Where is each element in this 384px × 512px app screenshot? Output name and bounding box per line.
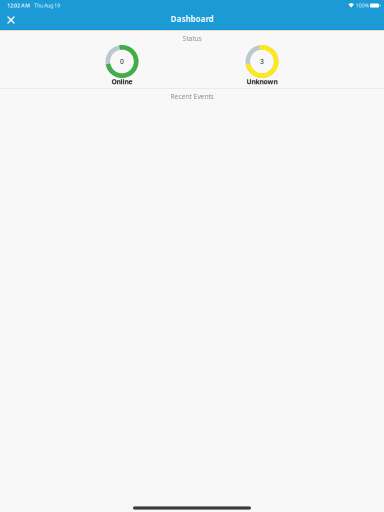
staticText: 0 — [120, 57, 124, 66]
staticText: Dashboard — [170, 14, 213, 24]
staticText: Online — [111, 77, 132, 86]
staticText: Unknown — [246, 77, 277, 86]
staticText: 12:02 AM — [7, 2, 30, 9]
staticText: 3 — [260, 57, 264, 66]
staticText: Recent Events — [170, 92, 213, 101]
button[interactable]: Close — [0, 10, 22, 29]
staticText: Status — [182, 34, 201, 43]
staticText: 100% — [355, 2, 368, 9]
staticText: Thu Aug 19 — [34, 2, 60, 9]
